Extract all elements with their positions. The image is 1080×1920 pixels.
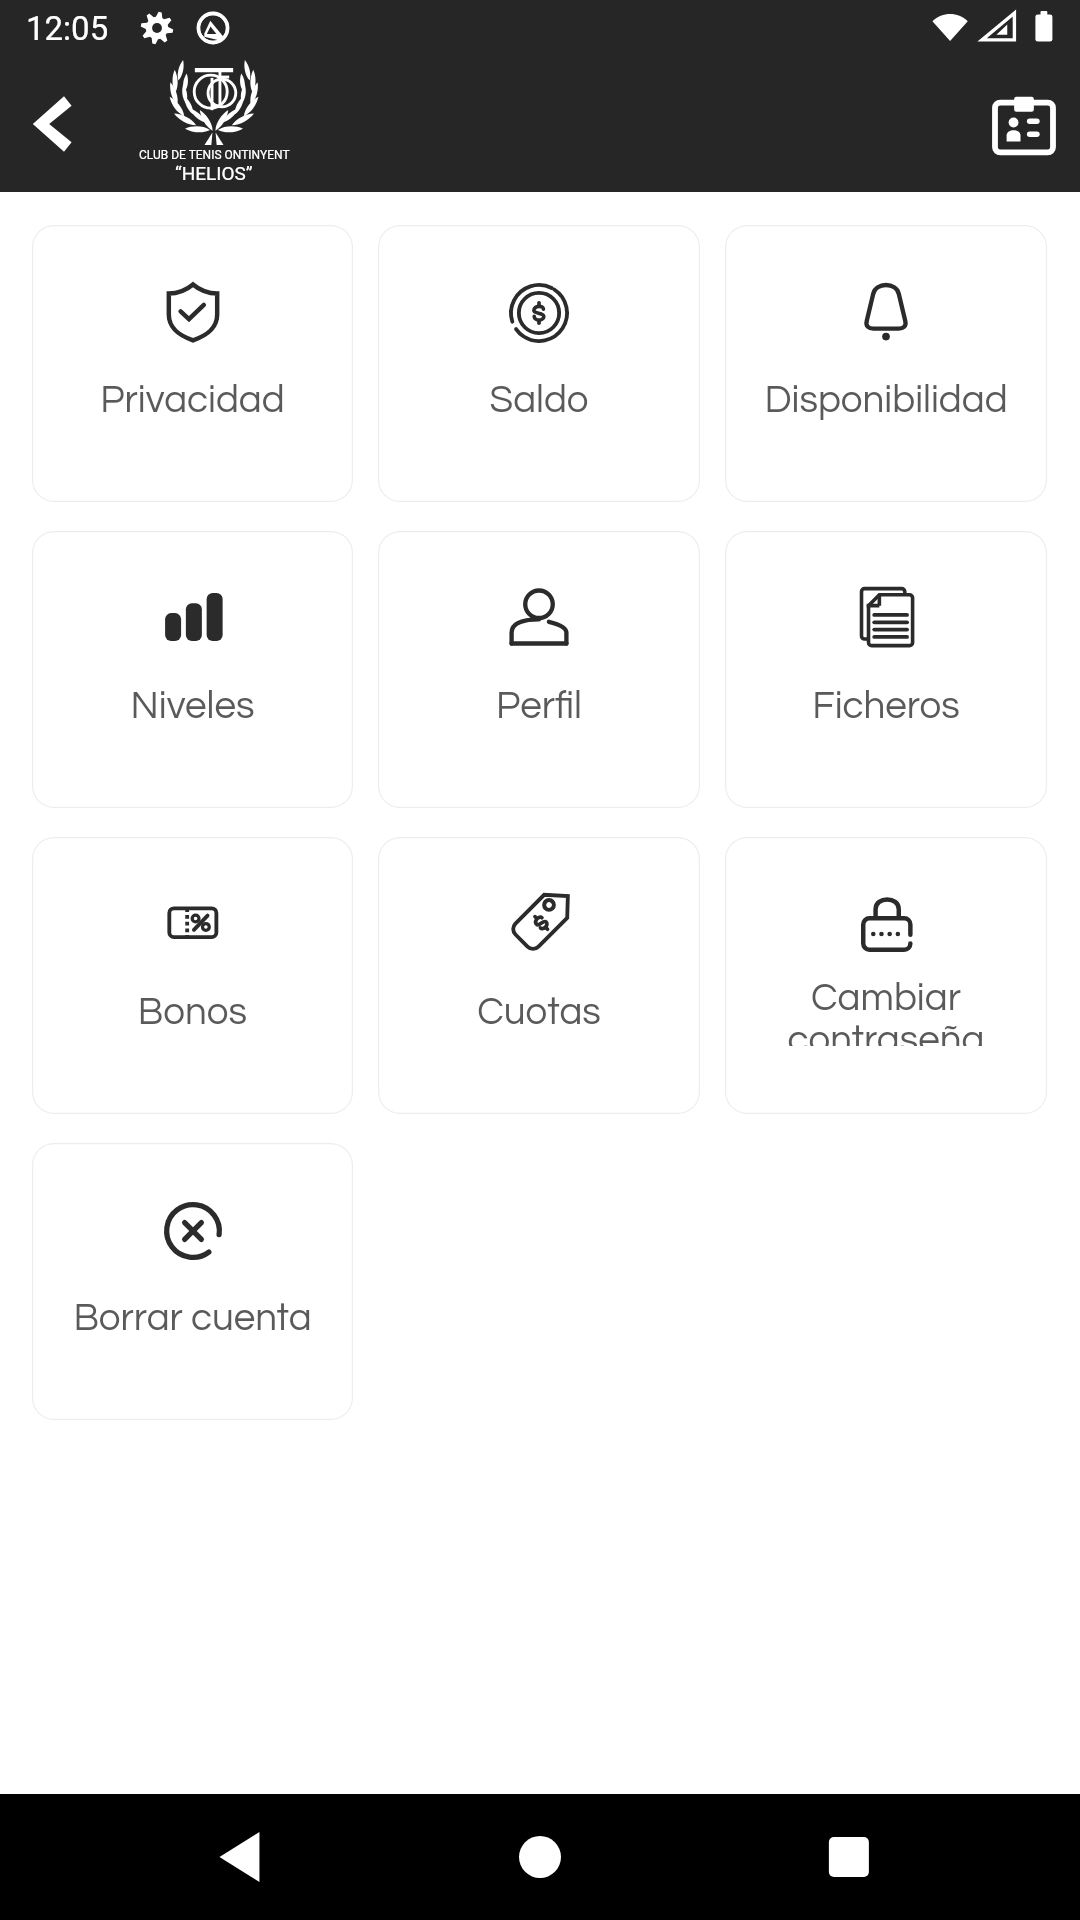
button[interactable]: Disponibilidad: [725, 225, 1047, 502]
staticText: Ficheros: [725, 686, 1047, 726]
button[interactable]: Back: [12, 84, 92, 164]
button[interactable]: Ficheros: [725, 531, 1047, 808]
button[interactable]: Saldo: [378, 225, 700, 502]
staticText: Privacidad: [32, 380, 353, 420]
staticText: Saldo: [378, 380, 700, 420]
button[interactable]: Borrar cuenta: [32, 1143, 353, 1420]
staticText: Niveles: [32, 686, 353, 726]
button[interactable]: Cambiar contraseña: [725, 837, 1047, 1114]
button[interactable]: Bonos: [32, 837, 353, 1114]
button[interactable]: Perfil: [378, 531, 700, 808]
staticText: Bonos: [32, 992, 353, 1032]
staticText: Cuotas: [378, 992, 700, 1032]
button[interactable]: Niveles: [32, 531, 353, 808]
staticText: Borrar cuenta: [32, 1298, 353, 1338]
staticText: “HELIOS”: [175, 162, 253, 184]
staticText: Perfil: [378, 686, 700, 726]
button[interactable]: Carnet: [982, 82, 1066, 166]
staticText: 12:05: [26, 9, 109, 48]
button[interactable]: Privacidad: [32, 225, 353, 502]
staticText: Cambiar contraseña: [725, 978, 1047, 1046]
staticText: Disponibilidad: [725, 380, 1047, 420]
staticText: CLUB DE TENIS ONTINYENT: [139, 148, 290, 162]
button[interactable]: Cuotas: [378, 837, 700, 1114]
